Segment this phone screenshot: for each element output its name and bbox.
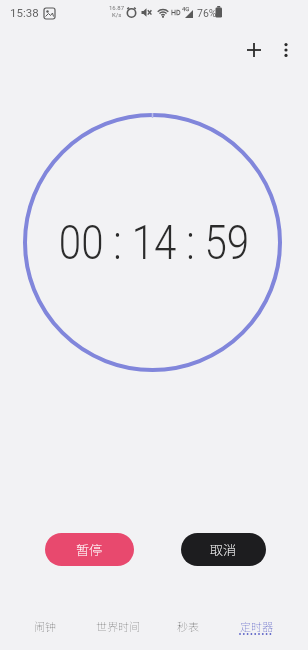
staticText: 取消 xyxy=(210,540,237,559)
button[interactable]: 世界时间 xyxy=(96,618,140,634)
button[interactable]: 取消 xyxy=(181,533,266,566)
staticText: 15:38 xyxy=(10,6,39,19)
staticText: K/s xyxy=(112,11,122,18)
button[interactable]: 秒表 xyxy=(177,618,199,634)
staticText: 定时器 xyxy=(240,618,273,634)
staticText: 秒表 xyxy=(177,618,199,634)
button[interactable]: 暂停 xyxy=(45,533,134,566)
staticText: 闹钟 xyxy=(34,618,56,634)
staticText: 暂停 xyxy=(76,540,103,559)
staticText: 4G xyxy=(182,5,190,12)
button[interactable]: 定时器 xyxy=(239,618,273,636)
button[interactable] xyxy=(272,36,300,64)
staticText: HD xyxy=(171,9,181,17)
staticText: 世界时间 xyxy=(96,618,140,634)
staticText: 76% xyxy=(197,7,217,19)
button[interactable] xyxy=(240,36,268,64)
staticText: 00 : 14 : 59 xyxy=(25,214,283,270)
button[interactable]: 闹钟 xyxy=(34,618,56,634)
staticText: 16.87 xyxy=(109,4,125,11)
